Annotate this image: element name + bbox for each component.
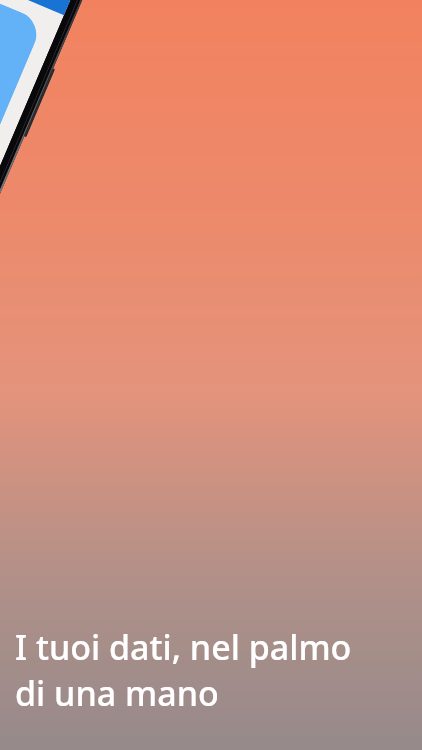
staticText: di una mano: [15, 670, 219, 716]
button[interactable]: Gestione dispositivi: [0, 0, 44, 160]
staticText: I tuoi dati, nel palmo: [15, 624, 352, 670]
